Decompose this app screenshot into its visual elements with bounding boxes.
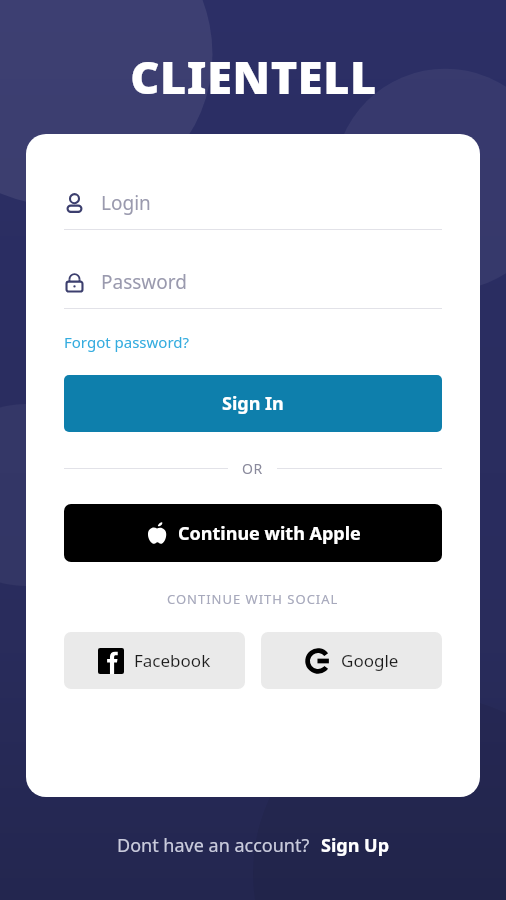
other: Login	[64, 193, 85, 214]
staticText: Sign Up	[321, 833, 390, 858]
staticText: OR	[242, 459, 263, 478]
button[interactable]: Forgot password?	[64, 332, 190, 352]
staticText: CLIENTELL	[130, 46, 377, 107]
staticText: Dont have an account?	[117, 833, 310, 858]
other: Password	[64, 272, 85, 293]
staticText: Login	[101, 190, 151, 216]
staticText: Google	[341, 649, 399, 672]
staticText: Continue with Apple	[178, 521, 361, 546]
staticText: Password	[101, 269, 187, 295]
button[interactable]: Sign In	[64, 375, 442, 432]
button[interactable]: Continue with Apple	[64, 504, 442, 562]
staticText: Facebook	[134, 649, 211, 672]
button[interactable]: Google	[261, 632, 442, 689]
staticText: Sign In	[222, 391, 284, 416]
button[interactable]: Sign Up	[321, 833, 390, 858]
staticText: CONTINUE WITH SOCIAL	[167, 590, 339, 608]
button[interactable]: Password	[64, 269, 442, 295]
staticText: Forgot password?	[64, 332, 190, 352]
button[interactable]: Login	[64, 190, 442, 216]
button[interactable]: Facebook	[64, 632, 245, 689]
